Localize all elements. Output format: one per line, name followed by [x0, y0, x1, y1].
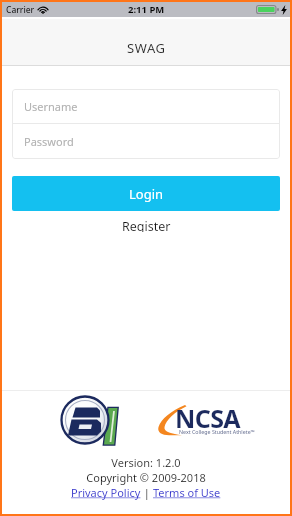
staticText: NCSA	[175, 401, 241, 435]
staticText: Privacy Policy	[71, 485, 141, 500]
staticText: 2:11 PM	[128, 3, 165, 16]
staticText: Version: 1.2.0	[2, 455, 290, 470]
staticText: Username	[24, 99, 78, 114]
staticText: Carrier	[6, 4, 35, 16]
staticText: Next College Student Athlete™	[179, 428, 279, 435]
staticText: SWAG	[127, 39, 166, 57]
staticText: Register	[122, 218, 171, 232]
staticText: Login	[129, 185, 164, 203]
button[interactable]: Username	[12, 89, 280, 123]
staticText: |	[141, 485, 153, 500]
button[interactable]: Terms of Use	[153, 485, 221, 500]
button[interactable]: Register	[112, 217, 181, 233]
button[interactable]: Privacy Policy	[71, 485, 141, 500]
staticText: Copyright © 2009-2018	[2, 470, 290, 485]
button[interactable]: Login	[12, 176, 280, 211]
staticText: Terms of Use	[153, 485, 221, 500]
staticText: Password	[24, 134, 74, 149]
button[interactable]: Password	[12, 124, 280, 159]
